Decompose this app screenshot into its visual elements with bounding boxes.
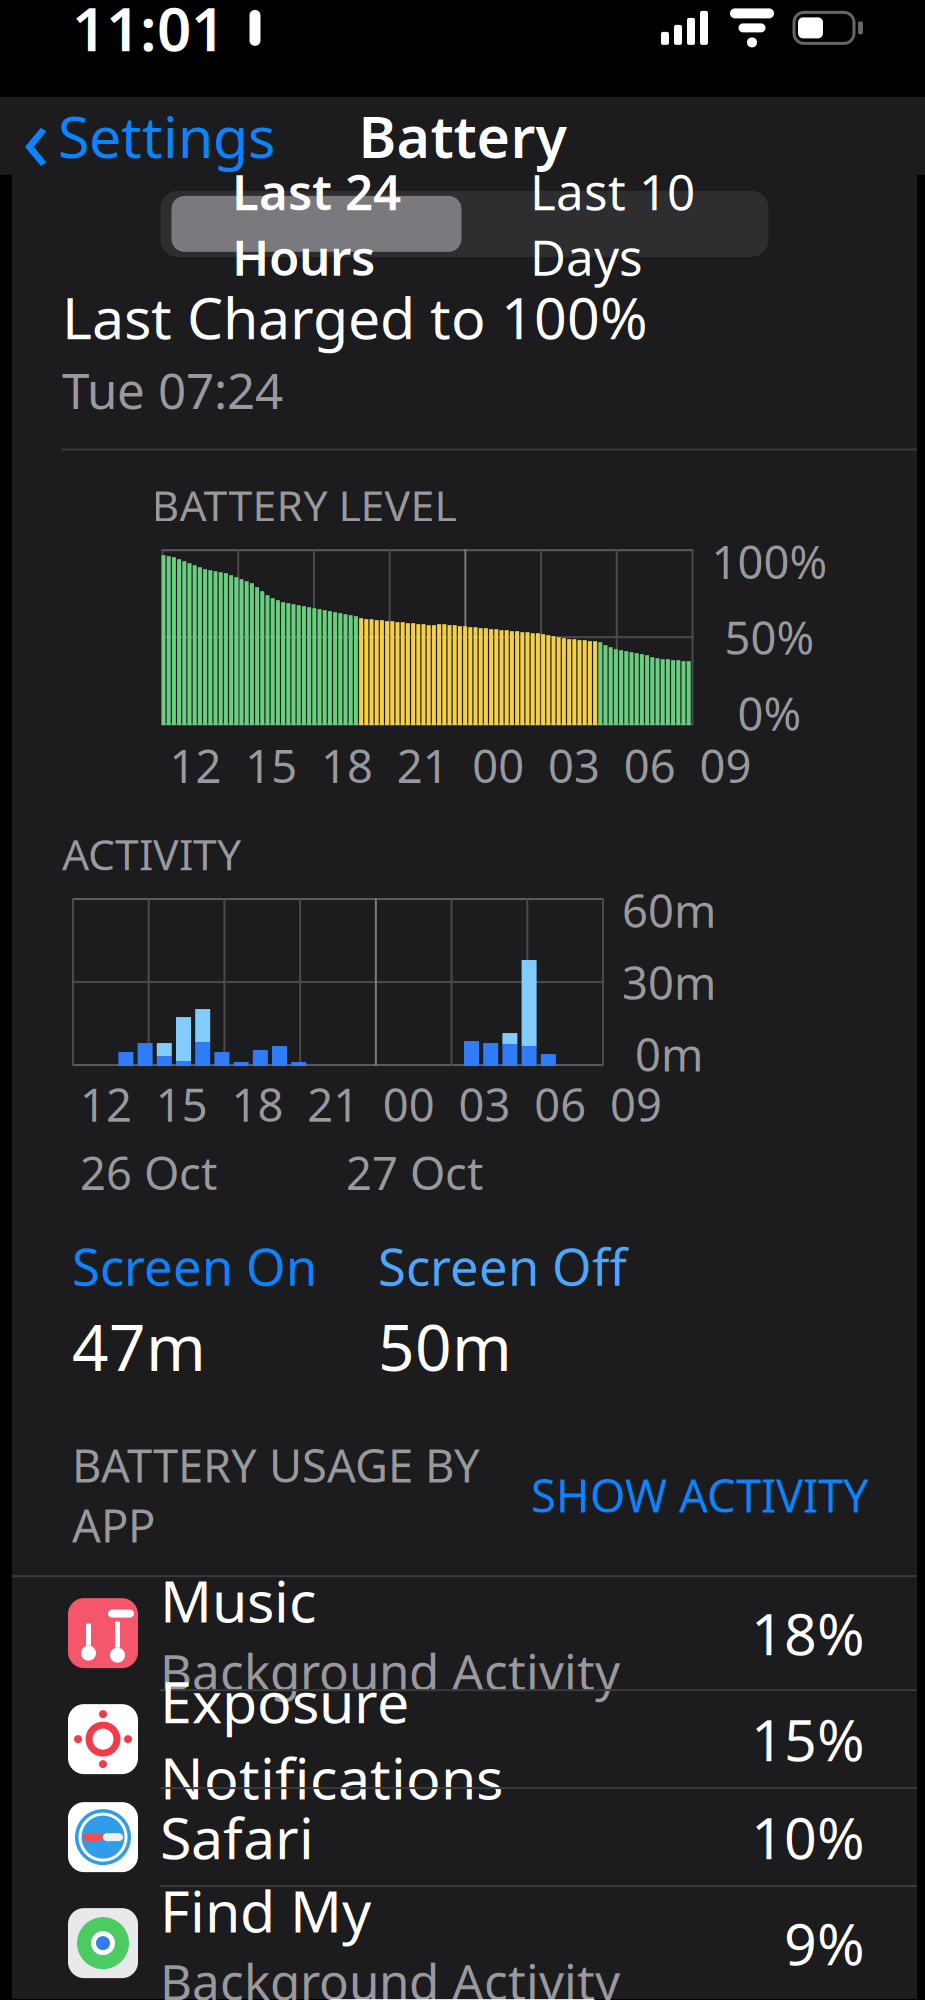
staticText: 26 Oct bbox=[80, 1142, 217, 1202]
staticText: 09 bbox=[699, 735, 751, 795]
staticText: 12 bbox=[169, 735, 221, 795]
staticText: 00 bbox=[383, 1074, 435, 1134]
staticText: Screen On bbox=[72, 1232, 317, 1300]
staticText: 15% bbox=[751, 1701, 865, 1777]
staticText: 18 bbox=[231, 1074, 283, 1134]
staticText: 06 bbox=[624, 735, 676, 795]
staticText: BATTERY LEVEL bbox=[151, 476, 456, 533]
button[interactable]: Safari bbox=[12, 1789, 917, 1885]
staticText: 21 bbox=[307, 1074, 359, 1134]
staticText: BATTERY USAGE BY APP bbox=[72, 1435, 480, 1555]
staticText: 0% bbox=[737, 683, 801, 743]
staticText: 15 bbox=[245, 735, 297, 795]
button[interactable]: Music bbox=[12, 1577, 917, 1689]
staticText: Find My bbox=[160, 1872, 371, 1948]
staticText: ACTIVITY bbox=[62, 825, 241, 882]
staticText: 06 bbox=[534, 1074, 586, 1134]
staticText: 21 bbox=[397, 735, 449, 795]
staticText: 50m bbox=[378, 1304, 512, 1389]
staticText: Last Charged to 100% bbox=[62, 279, 648, 355]
staticText: Last 24 Hours bbox=[232, 158, 401, 289]
staticText: 18 bbox=[321, 735, 373, 795]
button[interactable]: ‹ bbox=[0, 72, 293, 200]
staticText: 03 bbox=[548, 735, 600, 795]
staticText: Battery bbox=[358, 98, 566, 174]
button[interactable]: Last 10 Days bbox=[467, 196, 757, 252]
staticText: 12 bbox=[80, 1074, 132, 1134]
button[interactable]: SHOW ACTIVITY bbox=[531, 1457, 869, 1533]
staticText: 50% bbox=[724, 607, 814, 667]
staticText: 15 bbox=[156, 1074, 208, 1134]
button[interactable]: Last 24 Hours bbox=[171, 196, 461, 252]
staticText: Settings bbox=[58, 98, 275, 174]
staticText: 27 Oct bbox=[346, 1142, 483, 1202]
staticText: Tue 07:24 bbox=[62, 357, 283, 422]
staticText: SHOW ACTIVITY bbox=[531, 1465, 869, 1525]
staticText: 11:01 bbox=[72, 0, 225, 68]
staticText: Background Activity bbox=[160, 1948, 620, 2000]
staticText: 9% bbox=[784, 1905, 865, 1981]
staticText: 10% bbox=[751, 1799, 865, 1875]
staticText: ‹ bbox=[22, 76, 50, 196]
staticText: Safari bbox=[160, 1799, 314, 1875]
staticText: 03 bbox=[459, 1074, 511, 1134]
staticText: Last 10 Days bbox=[530, 158, 695, 289]
staticText: 100% bbox=[711, 531, 827, 591]
button[interactable]: Find My bbox=[12, 1887, 917, 1999]
staticText: Background Activity bbox=[160, 1638, 620, 1704]
staticText: Exposure Notifications bbox=[160, 1663, 503, 1815]
staticText: 30m bbox=[622, 952, 716, 1012]
staticText: 0m bbox=[635, 1024, 703, 1084]
staticText: Screen Off bbox=[378, 1232, 627, 1300]
staticText: 00 bbox=[472, 735, 524, 795]
button[interactable]: Exposure Notifications bbox=[12, 1691, 917, 1787]
staticText: 09 bbox=[610, 1074, 662, 1134]
staticText: 18% bbox=[751, 1595, 865, 1671]
staticText: Music bbox=[160, 1562, 317, 1638]
staticText: 60m bbox=[622, 880, 716, 940]
staticText: 47m bbox=[72, 1304, 206, 1389]
